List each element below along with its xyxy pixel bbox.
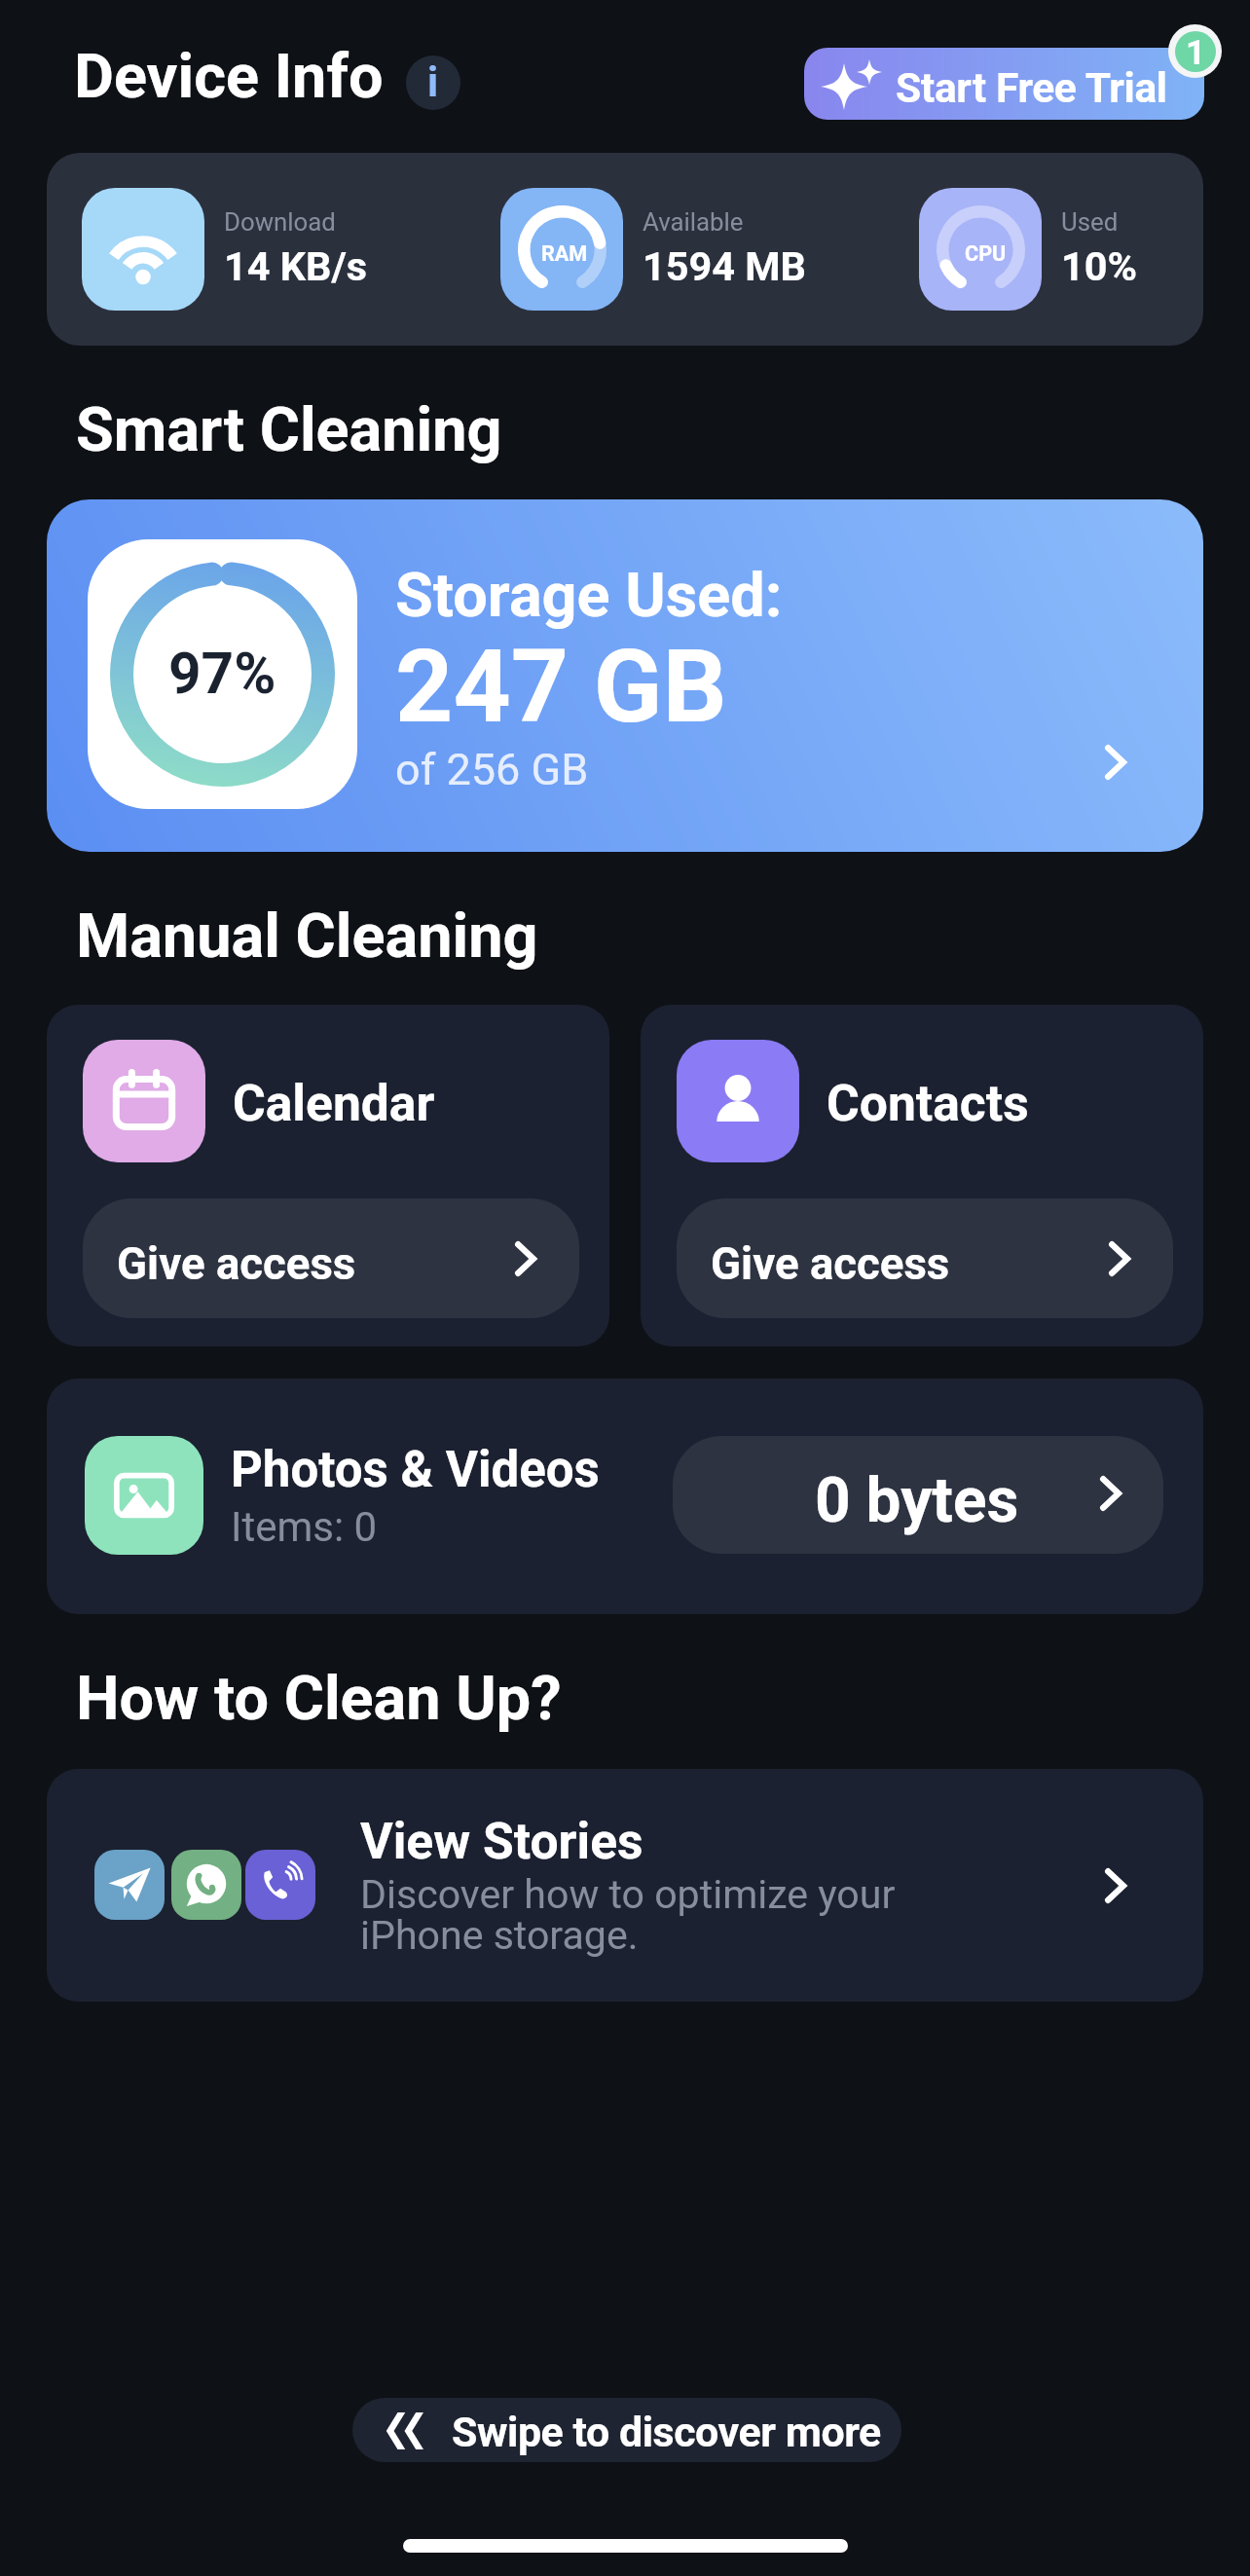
staticText: Download	[224, 207, 336, 237]
staticText: Storage Used:	[395, 560, 783, 632]
button[interactable]: Photos & Videos	[47, 1379, 1203, 1614]
staticText: Manual Cleaning	[76, 901, 538, 973]
staticText: Used	[1061, 207, 1119, 237]
staticText: Photos & Videos	[231, 1441, 600, 1499]
staticText: Calendar	[233, 1074, 435, 1132]
staticText: Give access	[117, 1238, 356, 1290]
staticText: 14 KB/s	[224, 243, 368, 291]
staticText: 97%	[168, 641, 276, 708]
button[interactable]: Give access	[83, 1198, 579, 1318]
staticText: Contacts	[827, 1074, 1029, 1132]
staticText: Device Info	[74, 41, 384, 113]
staticText: 1594 MB	[643, 243, 806, 291]
button[interactable]: 0 bytes	[673, 1436, 1163, 1554]
button[interactable]: 97%	[47, 499, 1203, 852]
staticText: Discover how to optimize your iPhone sto…	[360, 1871, 896, 1959]
staticText: How to Clean Up?	[76, 1663, 562, 1735]
staticText: Available	[643, 207, 744, 237]
staticText: of 256 GB	[395, 744, 589, 795]
button[interactable]: Start Free Trial	[804, 48, 1204, 120]
staticText: Swipe to discover more	[452, 2408, 881, 2456]
staticText: CPU	[965, 241, 1007, 266]
staticText: i	[427, 58, 439, 106]
staticText: RAM	[541, 241, 588, 266]
staticText: Start Free Trial	[896, 63, 1167, 112]
staticText: Items: 0	[231, 1503, 378, 1551]
staticText: View Stories	[360, 1812, 643, 1870]
staticText: Smart Cleaning	[76, 394, 502, 466]
staticText: Give access	[711, 1238, 950, 1290]
button[interactable]: Info	[406, 55, 460, 110]
staticText: 1	[1186, 32, 1206, 72]
staticText: 247 GB	[395, 628, 727, 746]
button[interactable]: View Stories	[47, 1769, 1203, 2002]
staticText: 0 bytes	[815, 1464, 1019, 1537]
staticText: 10%	[1061, 243, 1138, 291]
button[interactable]: Give access	[677, 1198, 1173, 1318]
button[interactable]: Swipe to discover more	[352, 2398, 901, 2462]
